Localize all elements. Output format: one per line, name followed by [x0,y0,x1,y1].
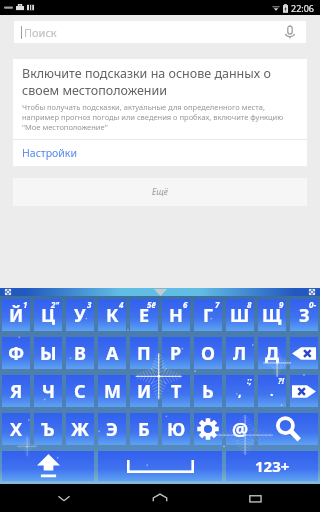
staticText: Включите подсказки на основе данных о св… [22,65,298,98]
staticText: Б [138,417,150,442]
staticText: Ь [202,379,214,404]
staticText: К [106,303,119,328]
staticText: . [270,382,274,400]
staticText: Ш [230,303,250,328]
button[interactable]: Ь [194,375,222,407]
staticText: Э [106,417,118,442]
staticText: Я [10,379,23,404]
staticText: Ф [8,341,25,366]
button[interactable]: Г [194,299,222,331]
staticText: С [74,379,86,404]
staticText: Г [203,303,214,328]
staticText: Й [9,303,24,328]
button[interactable]: Ещё [13,178,307,206]
button[interactable]: У [66,299,94,331]
button[interactable]: Recents [242,484,270,512]
staticText: 2" [51,299,60,310]
staticText: Ъ [41,417,55,442]
button[interactable]: Щ [258,299,286,331]
staticText: Щ [262,303,282,328]
staticText: Чтобы получать подсказки, актуальные для… [22,102,298,132]
staticText: , [238,382,242,400]
staticText: ?! [278,375,284,386]
staticText: Т [171,379,182,404]
button[interactable]: Х [2,413,30,445]
staticText: 123+ [255,456,290,476]
button[interactable]: Я [2,375,30,407]
button[interactable]: З [290,299,318,331]
staticText: @ [232,417,249,442]
button[interactable]: Home [146,484,174,512]
staticText: Ц [41,303,55,328]
staticText: О [201,341,215,366]
button[interactable]: О [194,337,222,369]
staticText: У [74,303,86,328]
button[interactable]: И [130,375,158,407]
staticText: Е [139,303,150,328]
button[interactable]: 123+ [226,451,318,481]
button[interactable]: Й [2,299,30,331]
staticText: Ы [40,341,57,366]
button[interactable]: Р [162,337,190,369]
staticText: Д [265,341,279,366]
staticText: Настройки [22,146,77,160]
staticText: Поиск [24,25,57,40]
staticText: З [299,303,310,328]
staticText: 4 [119,299,124,310]
button[interactable]: Настройки [13,140,307,166]
staticText: А [106,341,119,366]
staticText: 0- [309,299,316,310]
staticText: Р [170,341,182,366]
button[interactable]: Ш [226,299,254,331]
staticText: 3 [87,299,92,310]
button[interactable]: Т [162,375,190,407]
button[interactable]: П [130,337,158,369]
staticText: М [104,379,121,404]
staticText: 6 [183,299,188,310]
staticText: В [74,341,86,366]
button[interactable]: Ъ [34,413,62,445]
button[interactable]: Delete [290,375,318,407]
staticText: 5ё [147,299,156,310]
button[interactable]: Н [162,299,190,331]
staticText: 22:06 [291,2,315,14]
staticText: Ч [42,379,55,404]
staticText: 1 [23,299,28,310]
button[interactable]: Д [258,337,286,369]
staticText: 8 [247,299,252,310]
button[interactable]: Ж [66,413,94,445]
button[interactable]: Ц [34,299,62,331]
button[interactable]: Space [98,451,222,481]
staticText: Ю [167,417,186,442]
button[interactable]: Ю [162,413,190,445]
button[interactable]: @ [226,413,254,445]
button[interactable]: Voice search [280,22,300,42]
staticText: :; [247,375,252,386]
button[interactable]: Ч [34,375,62,407]
button[interactable]: Поиск [14,21,306,43]
button[interactable]: В [66,337,94,369]
button[interactable]: Search [258,413,318,445]
button[interactable]: . [258,375,286,407]
staticText: Х [10,417,23,442]
button[interactable]: Э [98,413,126,445]
button[interactable]: Shift [2,451,94,481]
button[interactable]: С [66,375,94,407]
staticText: 7 [215,299,220,310]
button[interactable]: К [98,299,126,331]
button[interactable]: Е [130,299,158,331]
button[interactable]: Б [130,413,158,445]
button[interactable]: М [98,375,126,407]
button[interactable]: Ф [2,337,30,369]
button[interactable]: Backspace [290,337,318,369]
staticText: Ещё [152,186,169,198]
staticText: 9 [279,299,284,310]
staticText: Н [169,303,183,328]
button[interactable]: Back [50,484,78,512]
button[interactable]: , [226,375,254,407]
staticText: И [137,379,152,404]
button[interactable]: А [98,337,126,369]
button[interactable]: Л [226,337,254,369]
button[interactable]: Settings [194,413,222,445]
button[interactable]: Ы [34,337,62,369]
